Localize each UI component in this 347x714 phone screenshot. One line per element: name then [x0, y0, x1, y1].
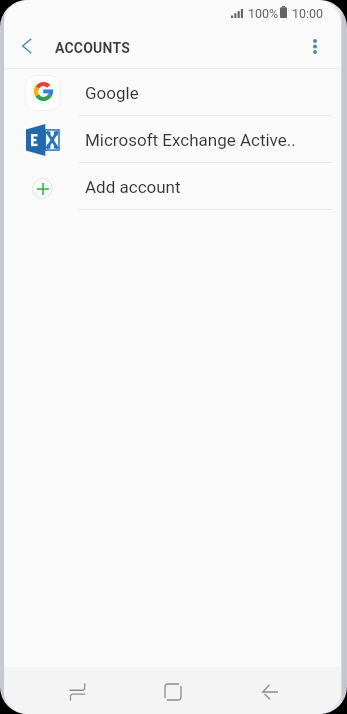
button[interactable]: More options [298, 29, 332, 63]
staticText: Google [85, 83, 139, 103]
staticText: 100% [248, 6, 279, 21]
staticText: ACCOUNTS [55, 40, 130, 56]
staticText: Microsoft Exchange Active.. [85, 130, 296, 150]
button[interactable]: Recent apps [57, 672, 97, 712]
button[interactable]: Add account [4, 163, 341, 210]
staticText: 10:00 [292, 6, 324, 21]
button[interactable]: Home [153, 672, 193, 712]
button[interactable]: Navigate up [10, 29, 44, 63]
button[interactable]: Back [250, 672, 290, 712]
button[interactable]: Microsoft Exchange Active.. [4, 116, 341, 163]
staticText: Add account [85, 177, 181, 197]
button[interactable]: Google [4, 69, 341, 116]
